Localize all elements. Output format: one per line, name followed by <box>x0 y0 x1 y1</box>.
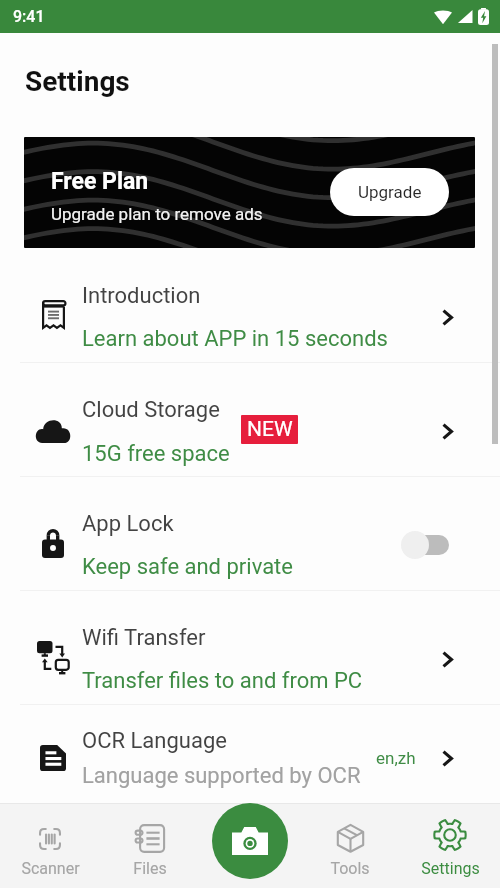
staticText: NEW <box>247 417 293 442</box>
staticText: Transfer files to and from PC <box>82 668 363 694</box>
button[interactable]: Files <box>100 803 200 888</box>
staticText: Cloud Storage <box>82 397 220 423</box>
button[interactable]: Camera <box>212 803 288 879</box>
staticText: Upgrade <box>358 182 422 202</box>
button[interactable]: Wifi Transfer <box>0 590 500 704</box>
staticText: Wifi Transfer <box>82 625 206 651</box>
staticText: Settings <box>421 859 480 878</box>
button[interactable]: App Lock <box>0 476 500 590</box>
staticText: 9:41 <box>13 7 45 26</box>
staticText: Free Plan <box>51 168 149 195</box>
button[interactable]: Tools <box>300 803 400 888</box>
staticText: Language supported by OCR <box>82 763 361 789</box>
button[interactable]: OCR Language <box>0 704 500 818</box>
staticText: Keep safe and private <box>82 554 293 580</box>
button[interactable]: Introduction <box>0 248 500 362</box>
staticText: Learn about APP in 15 seconds <box>82 326 388 352</box>
staticText: Tools <box>330 859 370 878</box>
button[interactable]: Settings <box>400 803 500 888</box>
staticText: Settings <box>25 65 130 98</box>
staticText: Upgrade plan to remove ads <box>51 204 263 224</box>
staticText: 15G free space <box>82 441 230 467</box>
staticText: App Lock <box>82 511 174 537</box>
staticText: en,zh <box>376 748 416 768</box>
staticText: OCR Language <box>82 728 227 754</box>
button[interactable]: App Lock toggle <box>401 530 449 560</box>
button[interactable]: Cloud Storage <box>0 362 500 476</box>
staticText: Scanner <box>21 859 80 878</box>
button[interactable]: Free Plan <box>24 137 475 248</box>
staticText: Files <box>133 859 167 878</box>
staticText: Introduction <box>82 283 201 309</box>
button[interactable]: Scanner <box>0 803 100 888</box>
button[interactable]: Upgrade <box>330 168 449 216</box>
